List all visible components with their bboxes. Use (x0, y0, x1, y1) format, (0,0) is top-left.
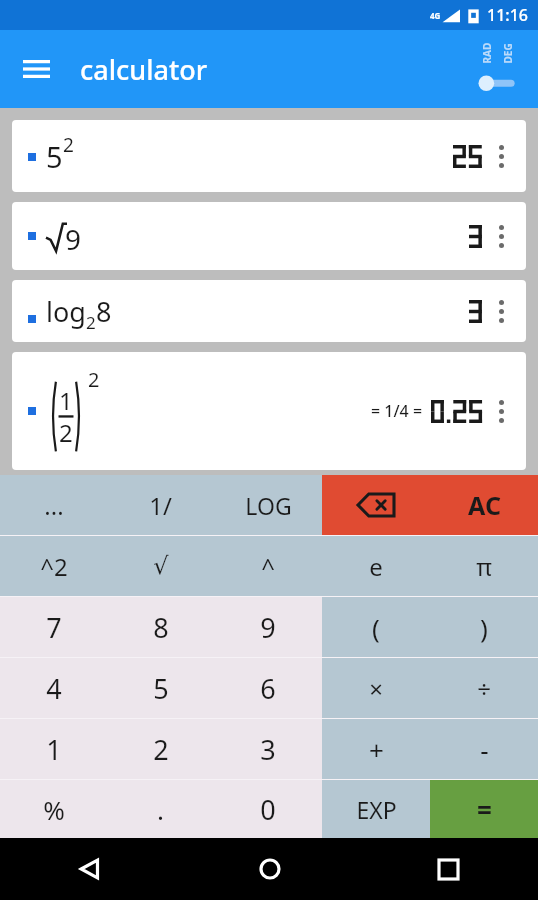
staticText: ÷ (477, 672, 491, 705)
staticText: ( (372, 610, 380, 645)
staticText: 6 (260, 670, 276, 707)
staticText: 7 (46, 609, 62, 646)
staticText: . (157, 792, 164, 827)
staticText: 1 (46, 731, 62, 768)
staticText: π (476, 550, 492, 583)
staticText: 4G (430, 10, 441, 21)
button[interactable]: Open navigation menu (12, 45, 60, 93)
staticText: 5 (153, 670, 169, 707)
button[interactable]: 6 (214, 658, 322, 718)
staticText: RAD (479, 42, 493, 63)
staticText: 1/ (149, 489, 172, 522)
button[interactable]: 5 (12, 120, 526, 192)
button[interactable]: ^ (214, 536, 322, 596)
button[interactable]: 9 (214, 597, 322, 657)
staticText: 8 (153, 609, 169, 646)
button[interactable]: LOG (214, 475, 322, 535)
button[interactable]: More options (484, 133, 518, 179)
button[interactable]: π (430, 536, 538, 596)
button[interactable]: 4 (0, 658, 107, 718)
button[interactable]: 1 (0, 719, 107, 779)
button[interactable]: AC (430, 475, 538, 535)
staticText: 11:16 (487, 4, 528, 26)
button[interactable]: More options (484, 213, 518, 259)
button[interactable]: 8 (107, 597, 214, 657)
staticText: × (369, 672, 383, 705)
staticText: ) (480, 610, 488, 645)
button[interactable]: ÷ (430, 658, 538, 718)
button[interactable]: 9 (12, 202, 526, 270)
button[interactable]: √ (107, 536, 214, 596)
button[interactable]: 2 (107, 719, 214, 779)
staticText: DEG (500, 42, 514, 63)
staticText: AC (468, 488, 501, 522)
button[interactable]: . (107, 780, 214, 838)
button[interactable]: Back (0, 838, 180, 900)
button[interactable]: ( (322, 597, 430, 657)
staticText: LOG (245, 490, 292, 521)
staticText: 2 (153, 731, 169, 768)
button[interactable]: % (0, 780, 107, 838)
staticText: ^ (261, 550, 275, 583)
button[interactable]: Home (180, 838, 359, 900)
button[interactable]: ) (430, 597, 538, 657)
staticText: 2 (59, 416, 73, 449)
button[interactable]: + (322, 719, 430, 779)
staticText: calculator (80, 51, 208, 88)
button[interactable]: 1 (12, 352, 526, 470)
staticText: ^2 (40, 550, 68, 583)
staticText: 2 (86, 311, 96, 334)
button[interactable]: Toggle radians or degrees (470, 38, 532, 100)
staticText: ... (44, 489, 64, 522)
button[interactable]: e (322, 536, 430, 596)
staticText: 9 (65, 220, 82, 258)
button[interactable]: EXP (322, 780, 430, 838)
staticText: 2 (63, 132, 74, 158)
staticText: + (369, 732, 384, 767)
staticText: log (46, 293, 86, 330)
staticText: √ (153, 552, 169, 580)
button[interactable]: - (430, 719, 538, 779)
button[interactable]: 7 (0, 597, 107, 657)
staticText: = 1/4 = (371, 400, 423, 422)
staticText: EXP (356, 794, 397, 825)
staticText: - (480, 732, 489, 767)
button[interactable]: ... (0, 475, 107, 535)
button[interactable]: × (322, 658, 430, 718)
button[interactable]: 0 (214, 780, 322, 838)
button[interactable]: 1/ (107, 475, 214, 535)
staticText: 9 (260, 609, 276, 646)
staticText: e (369, 550, 383, 583)
button[interactable]: log (12, 280, 526, 342)
staticText: = (477, 792, 492, 827)
button[interactable]: Recent apps (359, 838, 538, 900)
staticText: % (43, 792, 65, 827)
button[interactable]: 5 (107, 658, 214, 718)
button[interactable]: = (430, 780, 538, 838)
staticText: 1 (59, 384, 73, 417)
button[interactable]: More options (484, 388, 518, 434)
staticText: 4 (46, 670, 62, 707)
button[interactable]: 3 (214, 719, 322, 779)
button[interactable]: Backspace (322, 475, 430, 535)
staticText: 3 (260, 731, 276, 768)
staticText: 0 (260, 791, 276, 828)
staticText: 5 (46, 137, 63, 176)
button[interactable]: ^2 (0, 536, 107, 596)
staticText: 8 (96, 293, 112, 330)
staticText: 2 (88, 366, 100, 393)
button[interactable]: More options (484, 288, 518, 334)
